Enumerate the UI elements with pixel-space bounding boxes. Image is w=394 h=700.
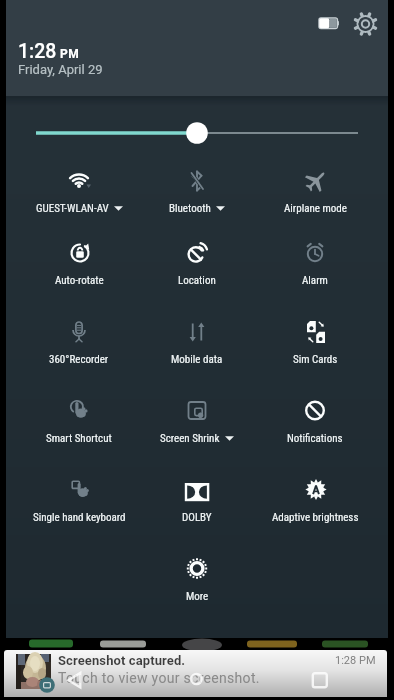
button[interactable] <box>303 663 336 695</box>
button[interactable]: Screen Shrink <box>131 395 263 457</box>
button[interactable]: Adaptive brightness <box>249 474 381 536</box>
staticText: 1:28 PM <box>335 654 376 667</box>
staticText: Single hand keyboard <box>33 511 126 524</box>
staticText: Alarm <box>302 274 328 287</box>
button[interactable] <box>58 664 92 696</box>
staticText: Location <box>178 274 216 287</box>
button[interactable]: Auto-rotate <box>13 237 145 299</box>
button[interactable]: GUEST-WLAN-AV <box>13 165 145 227</box>
button[interactable]: 360°Recorder <box>13 316 145 378</box>
staticText: Notifications <box>287 432 343 445</box>
staticText: 360°Recorder <box>49 353 109 366</box>
staticText: Bluetooth <box>169 202 211 215</box>
button[interactable] <box>352 10 380 38</box>
staticText: Adaptive brightness <box>272 511 359 524</box>
staticText: Screen Shrink <box>160 432 220 445</box>
button[interactable]: Single hand keyboard <box>13 474 145 536</box>
button[interactable]: Airplane mode <box>249 165 381 227</box>
staticText: Airplane mode <box>284 202 347 215</box>
button[interactable]: Location <box>131 237 263 299</box>
staticText: Screenshot captured. <box>58 653 186 668</box>
staticText: PM <box>60 47 80 61</box>
button[interactable]: Bluetooth <box>131 165 263 227</box>
staticText: Touch to view your screenshot. <box>58 670 260 686</box>
button[interactable]: Notifications <box>249 395 381 457</box>
staticText: Auto-rotate <box>55 274 104 287</box>
button[interactable] <box>6 110 388 156</box>
staticText: Friday, April 29 <box>18 62 103 77</box>
button[interactable]: Alarm <box>249 237 381 299</box>
staticText: Smart Shortcut <box>46 432 112 445</box>
staticText: DOLBY <box>182 511 212 524</box>
staticText: Sim Cards <box>293 353 338 366</box>
button[interactable] <box>180 663 213 695</box>
button[interactable]: Smart Shortcut <box>13 395 145 457</box>
staticText: More <box>186 590 209 603</box>
button[interactable]: Mobile data <box>131 316 263 378</box>
button[interactable]: Sim Cards <box>249 316 381 378</box>
staticText: 1:28 <box>18 40 57 63</box>
button[interactable]: Screenshot captured. <box>4 650 387 697</box>
button[interactable]: More <box>131 553 263 615</box>
button[interactable]: DOLBY <box>131 474 263 536</box>
staticText: Mobile data <box>171 353 223 366</box>
staticText: GUEST-WLAN-AV <box>36 202 109 215</box>
